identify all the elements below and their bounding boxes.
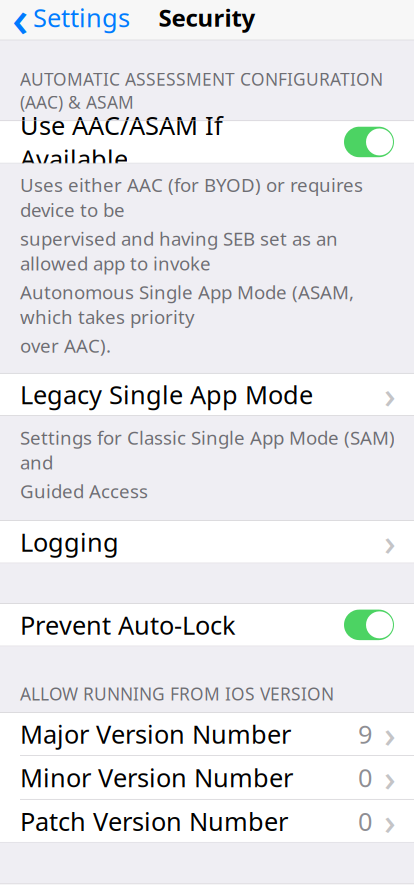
- staticText: 0: [358, 761, 372, 794]
- staticText: over AAC).: [20, 333, 111, 358]
- button[interactable]: Logging: [0, 520, 414, 563]
- staticText: Legacy Single App Mode: [20, 378, 313, 411]
- button[interactable]: Patch Version Number: [0, 800, 414, 843]
- staticText: ‹: [12, 0, 29, 51]
- staticText: ›: [384, 754, 396, 801]
- button[interactable]: Legacy Single App Mode: [0, 373, 414, 416]
- staticText: Minor Version Number: [20, 761, 293, 794]
- staticText: Guided Access: [20, 479, 148, 503]
- staticText: ›: [384, 518, 396, 566]
- staticText: Security: [158, 1, 255, 33]
- staticText: Logging: [20, 525, 119, 559]
- staticText: ›: [384, 710, 396, 758]
- button[interactable]: ‹: [0, 0, 140, 55]
- staticText: Uses either AAC (for BYOD) or requires d…: [20, 172, 363, 222]
- staticText: ›: [384, 371, 396, 418]
- staticText: Use AAC/ASAM If Available: [20, 108, 223, 176]
- staticText: 0: [358, 804, 372, 838]
- staticText: Major Version Number: [20, 717, 291, 751]
- button[interactable]: Minor Version Number: [0, 756, 414, 799]
- staticText: 9: [358, 717, 372, 751]
- staticText: ›: [384, 881, 396, 896]
- staticText: supervised and having SEB set as an allo…: [20, 226, 338, 276]
- button[interactable]: Prevent Auto-Lock: [0, 603, 414, 646]
- staticText: Settings: [33, 1, 130, 34]
- staticText: ›: [384, 797, 396, 845]
- staticText: AUTOMATIC ASSESSMENT CONFIGURATION (AAC)…: [20, 67, 383, 113]
- staticText: Autonomous Single App Mode (ASAM, which …: [20, 280, 354, 329]
- button[interactable]: Use AAC/ASAM If Available: [0, 120, 414, 163]
- staticText: Settings for Classic Single App Mode (SA…: [20, 425, 395, 475]
- staticText: Patch Version Number: [20, 804, 288, 838]
- staticText: ALLOW RUNNING FROM IOS VERSION: [20, 682, 334, 705]
- staticText: Prevent Auto-Lock: [20, 608, 236, 642]
- button[interactable]: Major Version Number: [0, 712, 414, 755]
